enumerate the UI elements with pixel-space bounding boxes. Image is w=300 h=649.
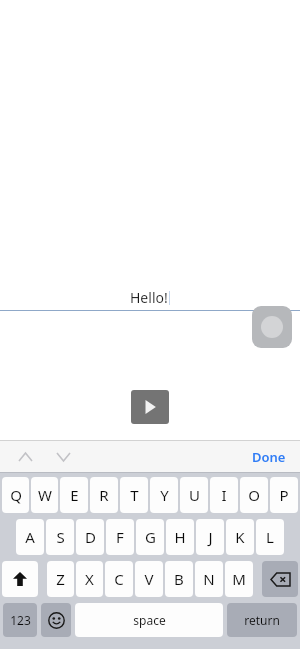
- staticText: Q: [10, 485, 22, 505]
- button[interactable]: H: [166, 519, 194, 555]
- staticText: N: [203, 569, 215, 589]
- button[interactable]: L: [256, 519, 284, 555]
- staticText: F: [116, 527, 124, 547]
- staticText: J: [208, 527, 213, 547]
- staticText: T: [130, 485, 139, 505]
- button[interactable]: Z: [47, 561, 74, 597]
- button[interactable]: Done: [250, 444, 288, 470]
- staticText: C: [114, 569, 124, 589]
- button[interactable]: Previous field: [12, 444, 38, 470]
- staticText: L: [266, 527, 274, 547]
- button[interactable]: F: [106, 519, 134, 555]
- staticText: R: [99, 485, 109, 505]
- staticText: Done: [252, 448, 286, 466]
- staticText: Z: [56, 569, 65, 589]
- button[interactable]: R: [90, 477, 118, 513]
- button[interactable]: T: [120, 477, 148, 513]
- button[interactable]: I: [210, 477, 238, 513]
- staticText: X: [85, 569, 94, 589]
- button[interactable]: M: [225, 561, 253, 597]
- staticText: K: [235, 527, 245, 547]
- staticText: I: [221, 485, 227, 505]
- button[interactable]: S: [46, 519, 74, 555]
- staticText: A: [25, 527, 35, 547]
- button[interactable]: B: [165, 561, 193, 597]
- button[interactable]: P: [270, 477, 298, 513]
- button[interactable]: A: [16, 519, 44, 555]
- staticText: Y: [160, 485, 169, 505]
- button[interactable]: O: [240, 477, 268, 513]
- staticText: G: [145, 527, 156, 547]
- button[interactable]: X: [76, 561, 103, 597]
- button[interactable]: N: [195, 561, 223, 597]
- button[interactable]: V: [135, 561, 163, 597]
- staticText: D: [85, 527, 96, 547]
- button[interactable]: Shift: [2, 561, 38, 597]
- staticText: M: [232, 569, 246, 589]
- button[interactable]: U: [180, 477, 208, 513]
- button[interactable]: Next field: [50, 444, 76, 470]
- button[interactable]: Q: [2, 477, 29, 513]
- staticText: P: [279, 485, 289, 505]
- button[interactable]: Emoji: [41, 603, 71, 637]
- staticText: V: [144, 569, 154, 589]
- button[interactable]: Backspace: [262, 561, 298, 597]
- button[interactable]: G: [136, 519, 164, 555]
- staticText: W: [38, 485, 52, 505]
- staticText: Hello!: [130, 288, 168, 307]
- button[interactable]: return: [227, 603, 297, 637]
- staticText: space: [133, 612, 166, 628]
- staticText: H: [174, 527, 186, 547]
- staticText: 123: [10, 612, 31, 628]
- button[interactable]: J: [196, 519, 224, 555]
- staticText: return: [244, 612, 280, 628]
- button[interactable]: D: [76, 519, 104, 555]
- staticText: O: [248, 485, 260, 505]
- button[interactable]: K: [226, 519, 254, 555]
- button[interactable]: E: [60, 477, 88, 513]
- staticText: B: [174, 569, 184, 589]
- button[interactable]: Image: [252, 306, 292, 348]
- button[interactable]: W: [31, 477, 58, 513]
- button[interactable]: Y: [150, 477, 178, 513]
- button[interactable]: space: [75, 603, 223, 637]
- button[interactable]: 123: [3, 603, 37, 637]
- staticText: U: [189, 485, 200, 505]
- button[interactable]: Play: [131, 390, 169, 424]
- staticText: S: [56, 527, 65, 547]
- staticText: E: [70, 485, 79, 505]
- button[interactable]: C: [105, 561, 133, 597]
